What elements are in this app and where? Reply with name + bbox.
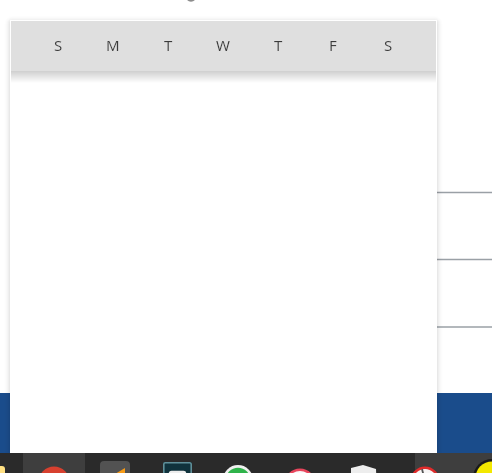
button[interactable]: T: [251, 20, 305, 70]
staticText: W: [216, 35, 230, 55]
button[interactable]: S: [31, 20, 85, 70]
button[interactable]: M: [86, 20, 140, 70]
staticText: S: [384, 35, 393, 55]
button[interactable]: F: [306, 20, 360, 70]
staticText: T: [164, 35, 173, 55]
button[interactable]: S: [361, 20, 415, 70]
staticText: T: [274, 35, 283, 55]
staticText: F: [329, 35, 337, 55]
staticText: M: [106, 35, 120, 55]
button[interactable]: W: [196, 20, 250, 70]
staticText: S: [54, 35, 63, 55]
button[interactable]: T: [141, 20, 195, 70]
